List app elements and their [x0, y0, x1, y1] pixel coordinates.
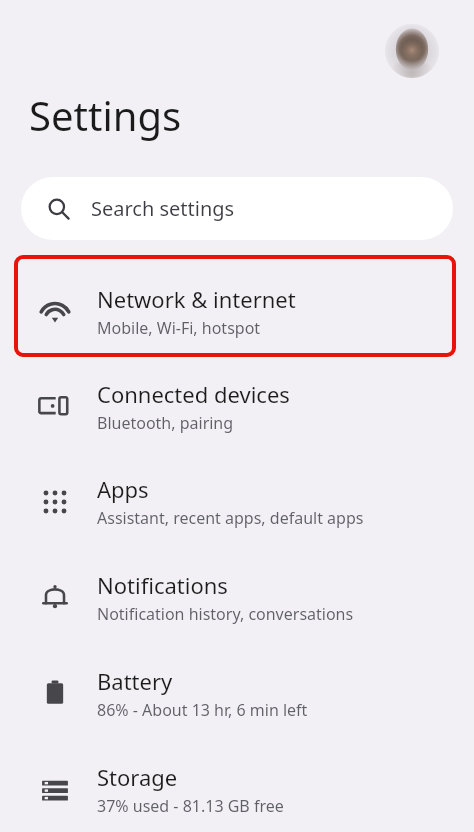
- staticText: Bluetooth, pairing: [97, 412, 234, 434]
- button[interactable]: Account profile: [385, 24, 439, 78]
- staticText: Network & internet: [97, 284, 296, 314]
- staticText: Connected devices: [97, 379, 290, 409]
- staticText: Apps: [97, 474, 149, 504]
- staticText: 86% - About 13 hr, 6 min left: [97, 699, 308, 721]
- staticText: Settings: [29, 88, 182, 142]
- button[interactable]: Network & internet: [0, 272, 474, 350]
- staticText: Assistant, recent apps, default apps: [97, 507, 364, 529]
- staticText: Search settings: [91, 195, 235, 222]
- staticText: 37% used - 81.13 GB free: [97, 795, 284, 817]
- button[interactable]: Connected devices: [0, 367, 474, 445]
- button[interactable]: Search settings: [21, 177, 453, 240]
- staticText: Mobile, Wi-Fi, hotspot: [97, 317, 261, 339]
- button[interactable]: Notifications: [0, 558, 474, 636]
- button[interactable]: Apps: [0, 462, 474, 540]
- button[interactable]: Storage: [0, 750, 474, 828]
- staticText: Battery: [97, 666, 173, 696]
- button[interactable]: Battery: [0, 654, 474, 732]
- staticText: Storage: [97, 762, 178, 792]
- staticText: Notifications: [97, 570, 228, 600]
- staticText: Notification history, conversations: [97, 603, 354, 625]
